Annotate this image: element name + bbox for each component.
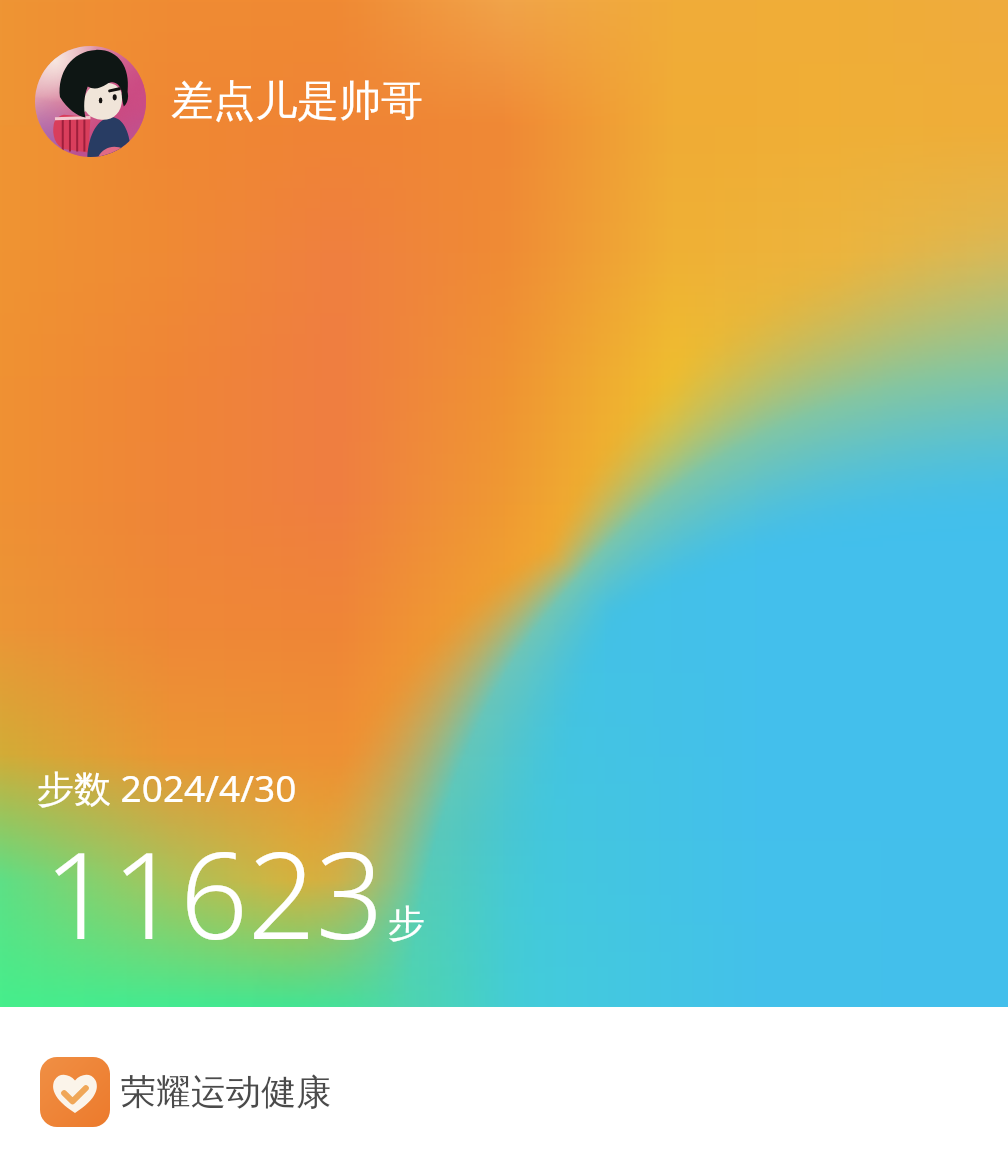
staticText: 11623 [44,812,384,974]
button[interactable]: 荣耀运动健康 [0,1007,1008,1176]
staticText: 荣耀运动健康 [121,1070,331,1114]
staticText: 步数 2024/4/30 [37,762,297,813]
staticText: 步 [388,900,425,947]
staticText: 差点儿是帅哥 [171,75,423,128]
